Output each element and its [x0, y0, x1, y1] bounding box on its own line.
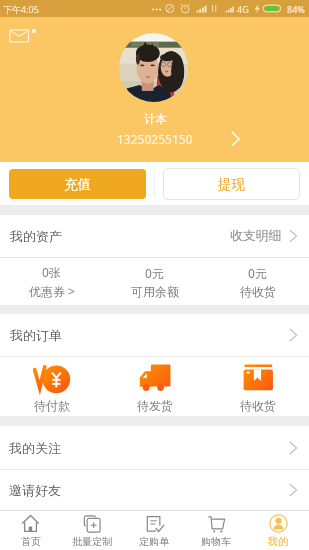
staticText: 13250255150 [117, 131, 193, 147]
staticText: 提现 [218, 176, 245, 193]
button[interactable]: 邀请好友 [0, 470, 309, 510]
button[interactable]: 批量定制 [61, 511, 123, 550]
button[interactable]: 购物车 [185, 511, 247, 550]
staticText: 可用余额 [131, 284, 179, 299]
staticText: 0张 [42, 264, 61, 280]
button[interactable]: 我的 [247, 511, 309, 550]
staticText: 0元 [145, 265, 164, 281]
staticText: 批量定制 [72, 535, 112, 548]
staticText: 我的关注 [9, 440, 61, 456]
staticText: 待发货 [137, 398, 173, 413]
staticText: 优惠券 > [29, 283, 75, 299]
staticText: 下午4:05 [3, 3, 39, 15]
button[interactable]: 充值 [9, 169, 146, 199]
staticText: 计本 [144, 112, 167, 126]
button[interactable]: 我的资产 [0, 215, 309, 257]
button[interactable]: 我的订单 [0, 314, 309, 356]
button[interactable]: 0张 [0, 258, 103, 305]
staticText: 我的 [268, 535, 288, 548]
button[interactable]: 我的关注 [0, 426, 309, 469]
staticText: 待收货 [240, 284, 276, 299]
button[interactable]: 待收货 [206, 357, 309, 416]
staticText: 待收货 [240, 398, 276, 413]
staticText: 定购单 [139, 535, 169, 548]
staticText: 收支明细 [230, 228, 282, 244]
button[interactable]: 0元 [206, 258, 309, 305]
button[interactable]: Messages [2, 23, 42, 63]
button[interactable]: 待付款 [0, 357, 103, 416]
staticText: 邀请好友 [9, 482, 61, 498]
button[interactable]: 待发货 [103, 357, 206, 416]
staticText: 购物车 [201, 535, 231, 548]
staticText: 我的订单 [10, 327, 62, 343]
staticText: 待付款 [34, 398, 70, 413]
button[interactable]: 0元 [103, 258, 206, 305]
staticText: 4G [237, 3, 249, 15]
staticText: 84% [287, 3, 305, 15]
staticText: 0元 [248, 265, 267, 281]
staticText: 充值 [64, 176, 91, 193]
staticText: 首页 [21, 535, 41, 548]
button[interactable]: Profile detail [226, 129, 246, 149]
button[interactable]: 提现 [163, 168, 300, 200]
staticText: 我的资产 [10, 228, 62, 244]
button[interactable]: 首页 [0, 511, 61, 550]
button[interactable]: 定购单 [123, 511, 185, 550]
